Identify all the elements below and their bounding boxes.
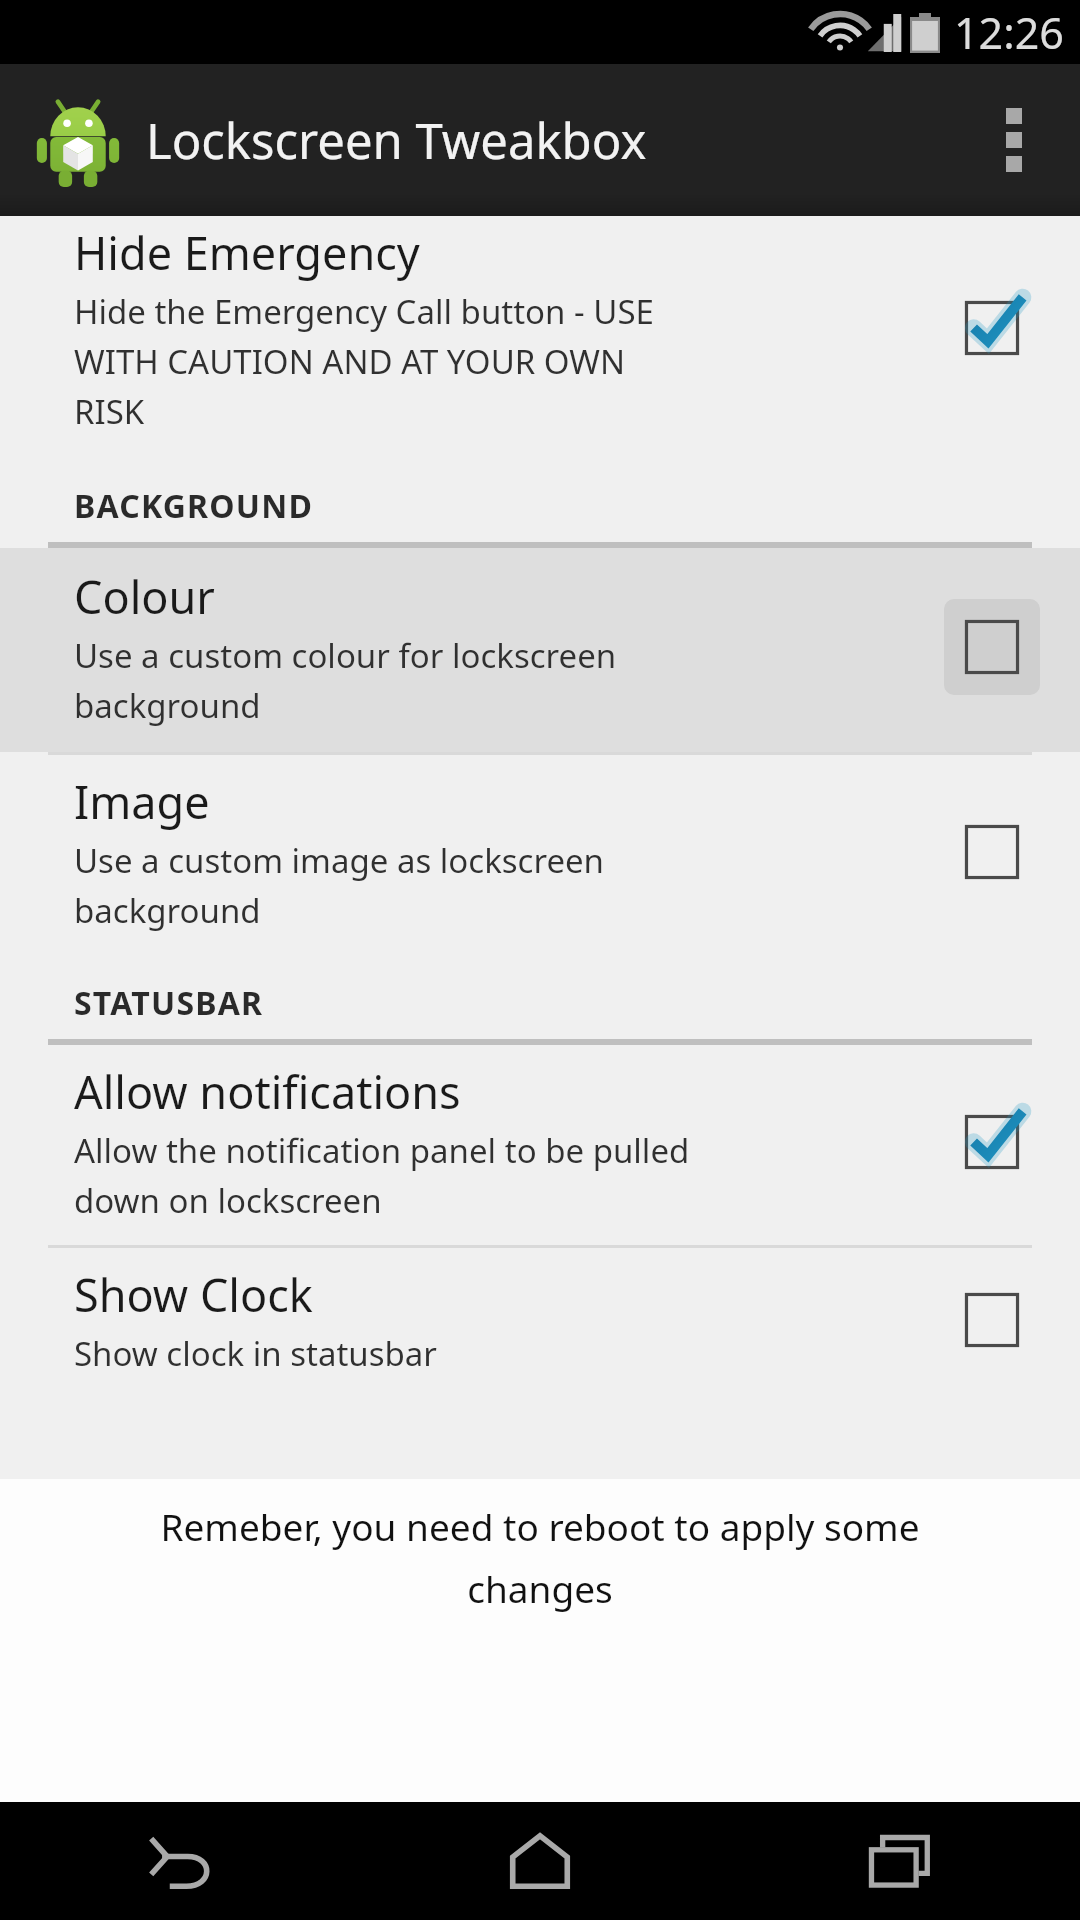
staticText: Lockscreen Tweakbox: [146, 107, 966, 174]
staticText: 12:26: [954, 3, 1064, 62]
staticText: Show Clock: [74, 1264, 313, 1325]
staticText: Use a custom colour for lockscreen backg…: [74, 633, 617, 728]
staticText: STATUSBAR: [74, 981, 264, 1025]
button[interactable]: Home: [360, 1802, 720, 1920]
staticText: Image: [74, 771, 210, 832]
button[interactable]: Back: [0, 1802, 360, 1920]
button[interactable]: Allow notifications: [0, 1045, 1080, 1245]
staticText: Allow the notification panel to be pulle…: [74, 1128, 690, 1223]
staticText: Show clock in statusbar: [74, 1331, 437, 1376]
button[interactable]: Image: [0, 755, 1080, 955]
button[interactable]: Show Clock: [0, 1248, 1080, 1398]
button[interactable]: Colour: [0, 548, 1080, 752]
button[interactable]: Hide Emergency: [0, 216, 1080, 458]
button[interactable]: Recent apps: [720, 1802, 1080, 1920]
staticText: Remeber, you need to reboot to apply som…: [18, 1501, 1062, 1614]
button[interactable]: More options: [966, 64, 1062, 216]
staticText: Colour: [74, 566, 215, 627]
staticText: Hide the Emergency Call button - USE WIT…: [74, 289, 654, 434]
staticText: Allow notifications: [74, 1061, 461, 1122]
staticText: BACKGROUND: [74, 484, 314, 528]
staticText: Use a custom image as lockscreen backgro…: [74, 838, 605, 933]
staticText: Hide Emergency: [74, 222, 420, 283]
